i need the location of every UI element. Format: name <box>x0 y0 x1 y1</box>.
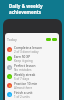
staticText: Today <box>7 37 17 42</box>
button[interactable]: Earn 50 XP <box>5 54 59 63</box>
staticText: Almost there <box>14 86 33 90</box>
button[interactable]: Perfect lesson <box>5 63 59 72</box>
staticText: Daily & weekly <box>9 3 43 9</box>
staticText: 1 of 2 units <box>14 95 30 99</box>
staticText: 2 of 3 done today <box>14 50 39 54</box>
staticText: Earn 50 XP <box>14 55 31 59</box>
staticText: achievements <box>9 9 42 15</box>
staticText: Finish a unit <box>14 91 33 95</box>
button[interactable]: Complete a lesson <box>5 45 59 54</box>
staticText: Complete a lesson <box>14 46 42 50</box>
staticText: No mistakes <box>14 68 32 72</box>
button[interactable]: Finish a unit <box>5 90 59 99</box>
button[interactable]: Weekly streak <box>5 72 59 81</box>
staticText: Keep it going <box>14 59 33 63</box>
staticText: Weekly streak <box>14 73 36 77</box>
staticText: 5 of 7 days <box>14 77 30 81</box>
staticText: Perfect lesson <box>14 64 36 68</box>
button[interactable]: Practice 10 min <box>5 81 59 90</box>
staticText: Practice 10 min <box>14 82 38 86</box>
